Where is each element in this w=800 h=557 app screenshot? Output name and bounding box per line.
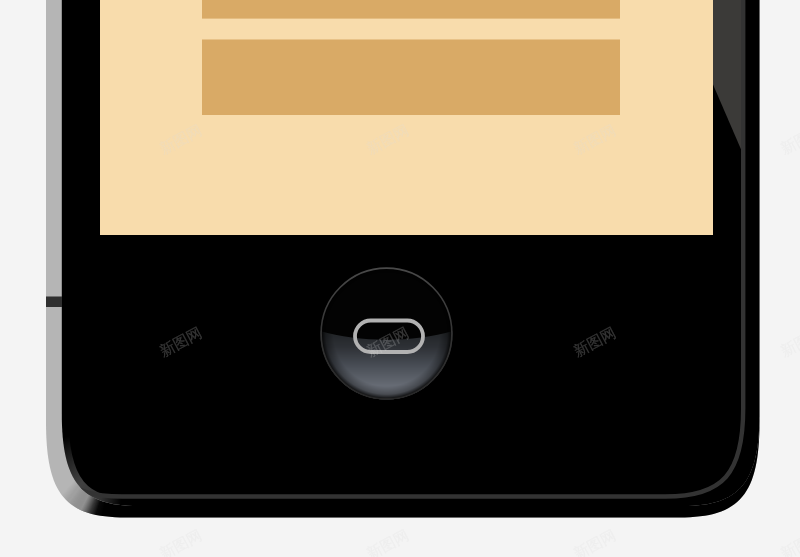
button[interactable]: Smartphone illustration <box>0 0 800 557</box>
